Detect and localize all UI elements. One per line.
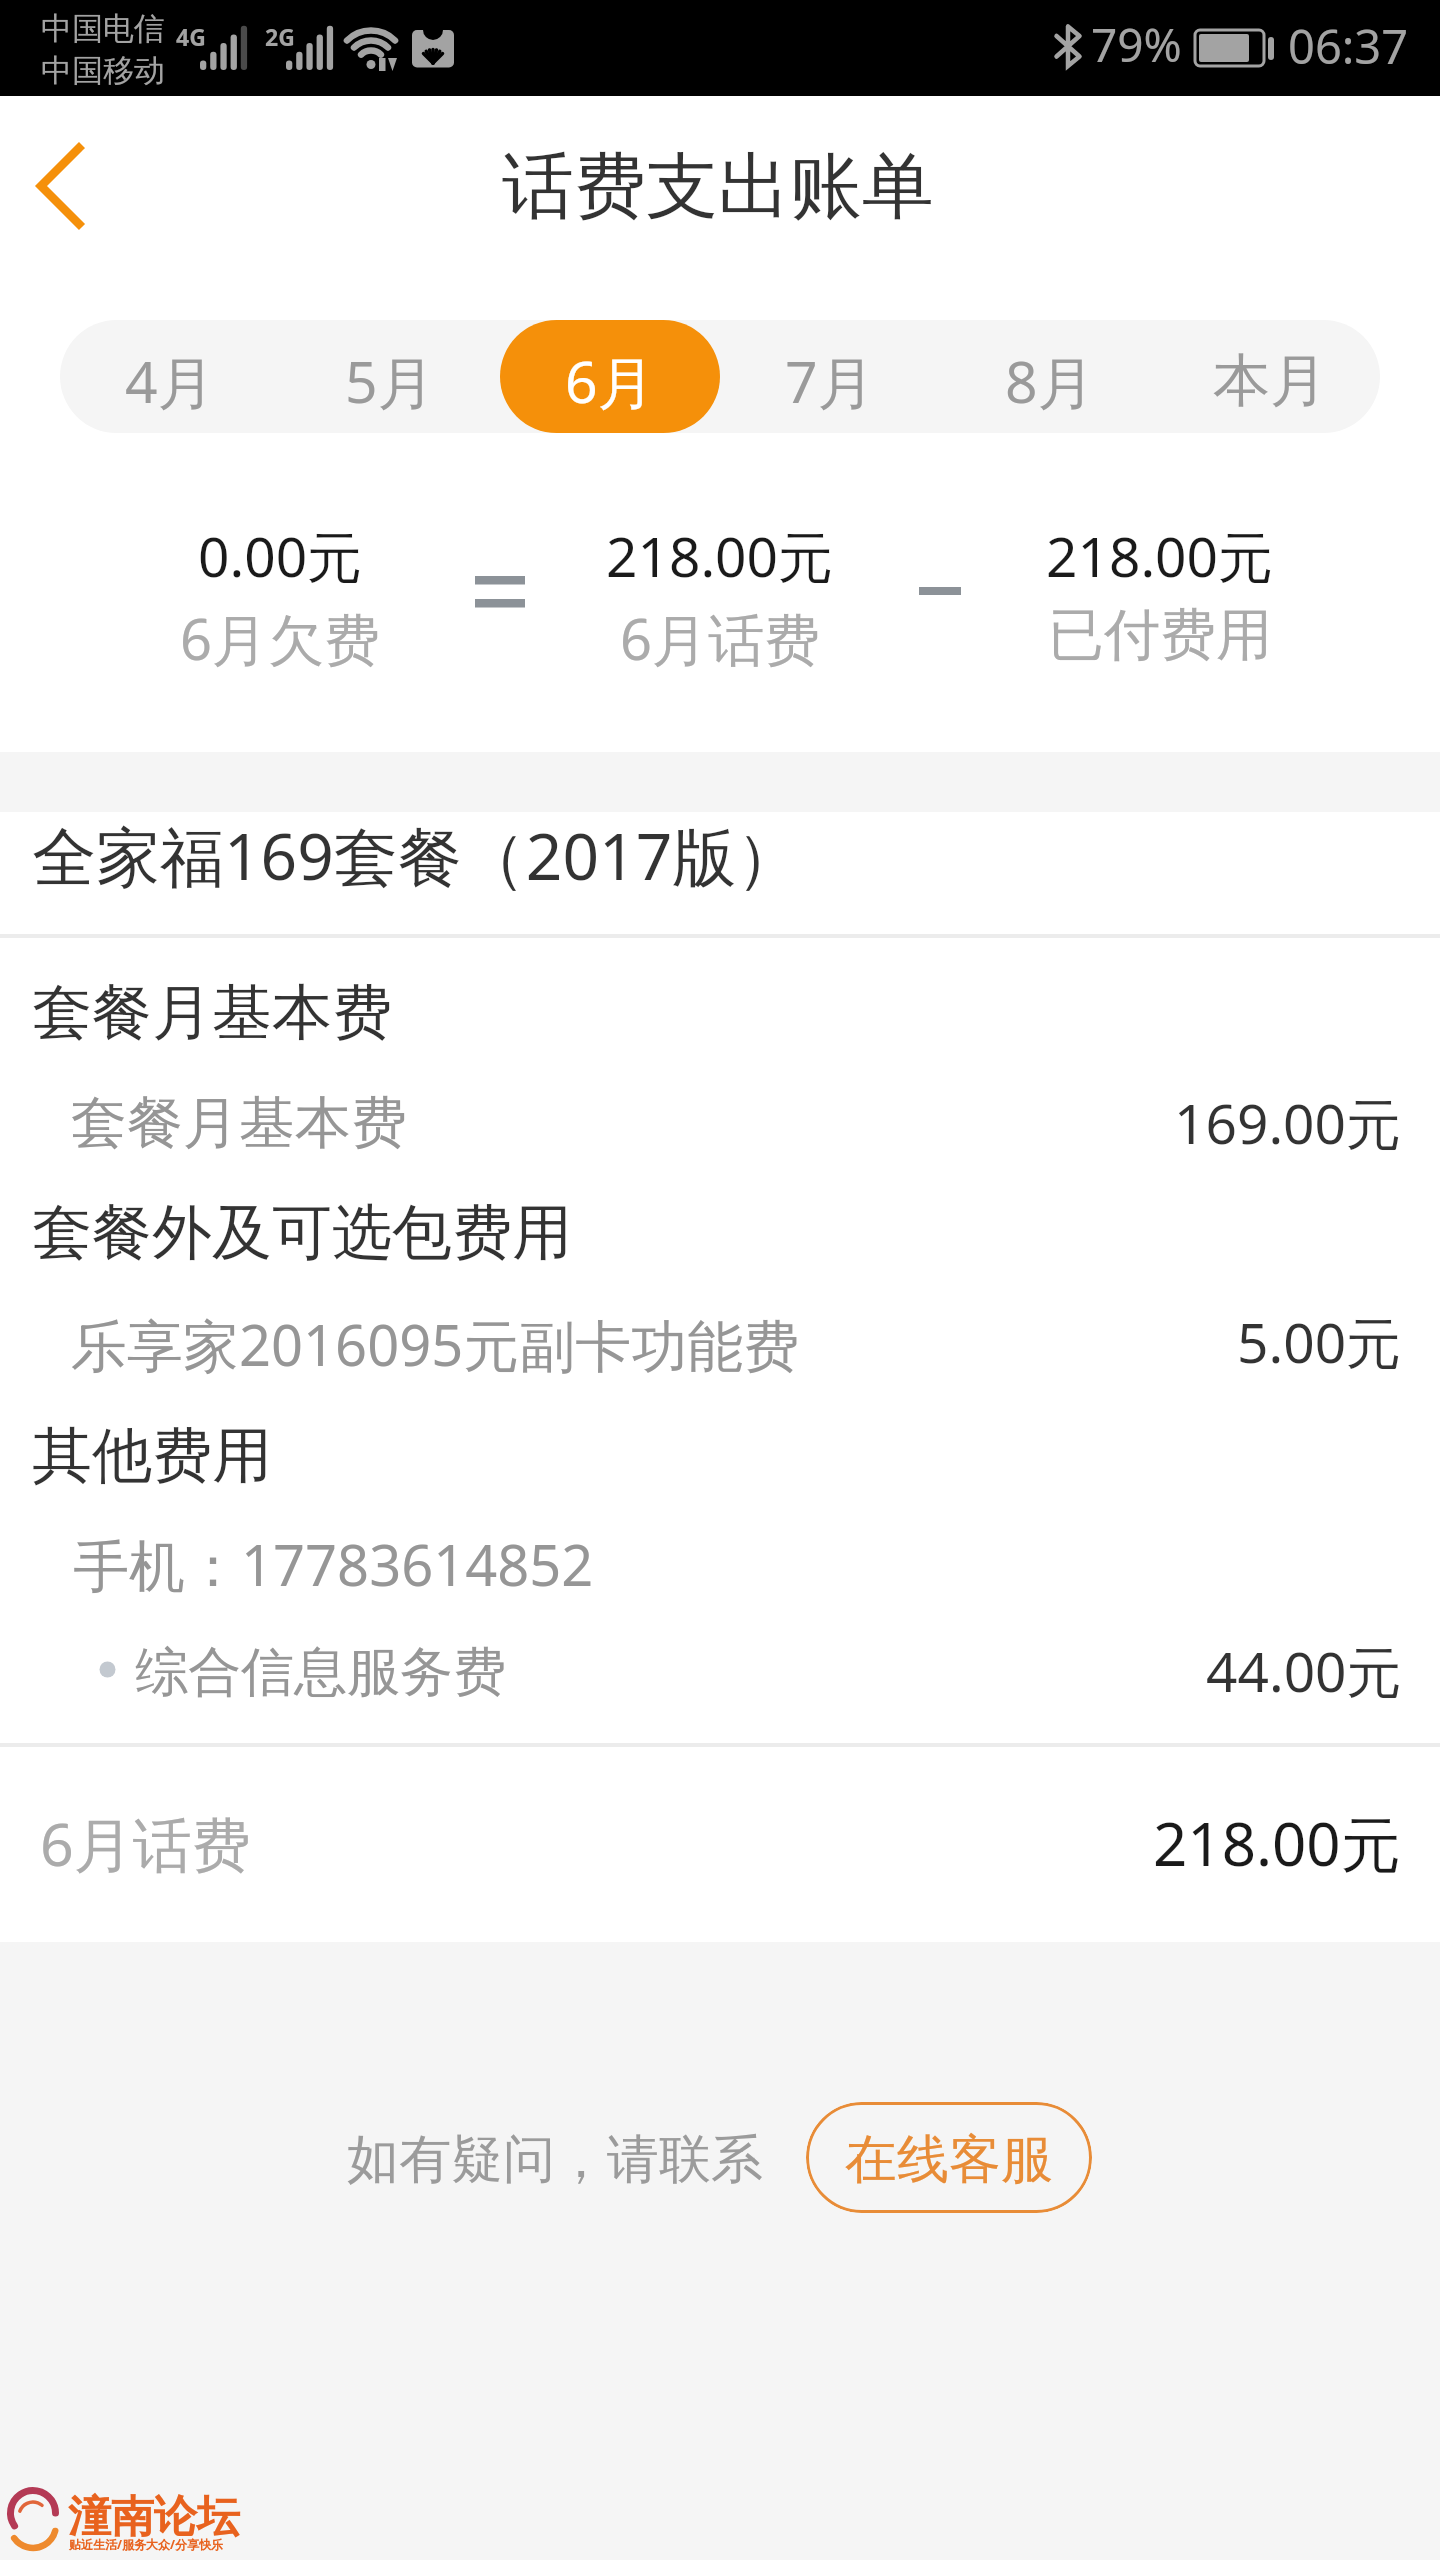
staticText: 套餐月基本费: [71, 1088, 407, 1159]
staticText: 2G: [265, 21, 295, 52]
staticText: 乐享家2016095元副卡功能费: [71, 1306, 800, 1382]
staticText: 其他费用: [32, 1418, 272, 1494]
staticText: 本月: [1213, 345, 1327, 417]
staticText: 44.00元: [1206, 1633, 1402, 1708]
staticText: 5.00元: [1237, 1304, 1402, 1379]
staticText: 5月: [345, 342, 435, 420]
staticText: 中国移动: [41, 51, 165, 90]
staticText: 4月: [125, 342, 215, 420]
staticText: 0.00元: [198, 518, 363, 593]
staticText: 已付费用: [1048, 600, 1272, 671]
staticText: 218.00元: [1046, 518, 1274, 593]
staticText: 套餐外及可选包费用: [32, 1195, 572, 1271]
staticText: 中国电信: [41, 9, 165, 48]
staticText: 综合信息服务费: [135, 1639, 506, 1706]
staticText: 8月: [1005, 342, 1095, 420]
button[interactable]: 4月: [60, 324, 280, 437]
staticText: 218.00元: [606, 518, 834, 593]
button[interactable]: 本月: [1160, 324, 1380, 437]
staticText: 套餐月基本费: [32, 975, 392, 1051]
staticText: 手机：17783614852: [73, 1526, 594, 1602]
staticText: 4G: [176, 21, 206, 52]
staticText: 79%: [1091, 13, 1182, 76]
button[interactable]: 5月: [280, 324, 500, 437]
button[interactable]: 6月: [500, 324, 720, 437]
staticText: 218.00元: [1153, 1802, 1401, 1884]
button[interactable]: 在线客服: [806, 2102, 1092, 2213]
staticText: 潼南论坛: [68, 2490, 240, 2544]
staticText: 如有疑问，请联系: [347, 2127, 763, 2193]
button[interactable]: 7月: [720, 324, 940, 437]
staticText: 贴近生活/服务大众/分享快乐: [69, 2536, 223, 2552]
staticText: 06:37: [1288, 14, 1409, 78]
staticText: 话费支出账单: [502, 142, 934, 233]
staticText: 7月: [785, 342, 875, 420]
button[interactable]: 8月: [940, 324, 1160, 437]
staticText: 6月: [565, 342, 655, 420]
staticText: 6月话费: [620, 600, 821, 676]
staticText: 169.00元: [1174, 1085, 1402, 1160]
button[interactable]: Back: [0, 96, 150, 280]
staticText: 6月话费: [40, 1803, 251, 1884]
staticText: 全家福169套餐（2017版）: [32, 812, 801, 899]
staticText: 在线客服: [845, 2127, 1053, 2193]
staticText: 6月欠费: [180, 600, 381, 676]
